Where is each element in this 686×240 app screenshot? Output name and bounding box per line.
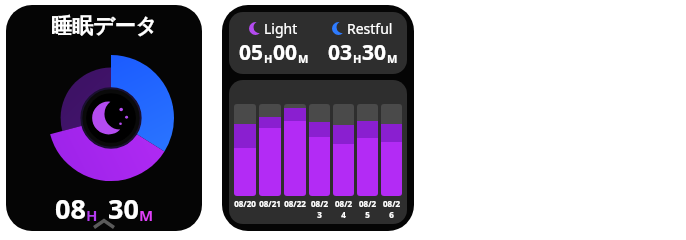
staticText: 08/25 bbox=[357, 198, 378, 220]
button[interactable]: Restful sleep bbox=[318, 19, 407, 67]
staticText: 08/22 bbox=[284, 198, 306, 209]
staticText: 睡眠データ bbox=[51, 13, 157, 39]
button[interactable] bbox=[333, 104, 354, 196]
staticText: H bbox=[264, 51, 273, 66]
staticText: 30 bbox=[362, 38, 387, 67]
staticText: M bbox=[298, 51, 309, 66]
other: Restful sleep bbox=[332, 22, 345, 35]
staticText: H bbox=[86, 205, 98, 225]
staticText: 03 bbox=[328, 38, 353, 67]
other: Sleep stages chart bbox=[48, 55, 174, 181]
button[interactable]: Light sleep bbox=[229, 19, 318, 67]
staticText: 08 bbox=[55, 190, 86, 227]
staticText: 08/26 bbox=[381, 198, 402, 220]
staticText: Light bbox=[264, 19, 298, 38]
button[interactable]: 睡眠データ bbox=[6, 5, 202, 231]
button[interactable] bbox=[357, 104, 378, 196]
staticText: 05 bbox=[239, 38, 264, 67]
button[interactable]: Light sleep bbox=[229, 12, 407, 74]
button[interactable] bbox=[381, 104, 402, 196]
staticText: 30 bbox=[108, 190, 139, 227]
staticText: 08/23 bbox=[309, 198, 330, 220]
button[interactable]: 08/20 bbox=[229, 80, 407, 224]
staticText: Restful bbox=[347, 19, 393, 38]
staticText: 00 bbox=[273, 38, 298, 67]
button[interactable] bbox=[259, 104, 281, 196]
staticText: M bbox=[139, 205, 154, 225]
button[interactable] bbox=[284, 104, 306, 196]
button[interactable] bbox=[234, 104, 256, 196]
button[interactable] bbox=[309, 104, 330, 196]
staticText: 08/20 bbox=[234, 198, 256, 209]
other: Scroll up bbox=[94, 219, 114, 229]
staticText: M bbox=[387, 51, 398, 66]
staticText: H bbox=[353, 51, 362, 66]
other: Light sleep bbox=[249, 22, 262, 35]
staticText: 08/21 bbox=[259, 198, 281, 209]
staticText: 08/24 bbox=[333, 198, 354, 220]
